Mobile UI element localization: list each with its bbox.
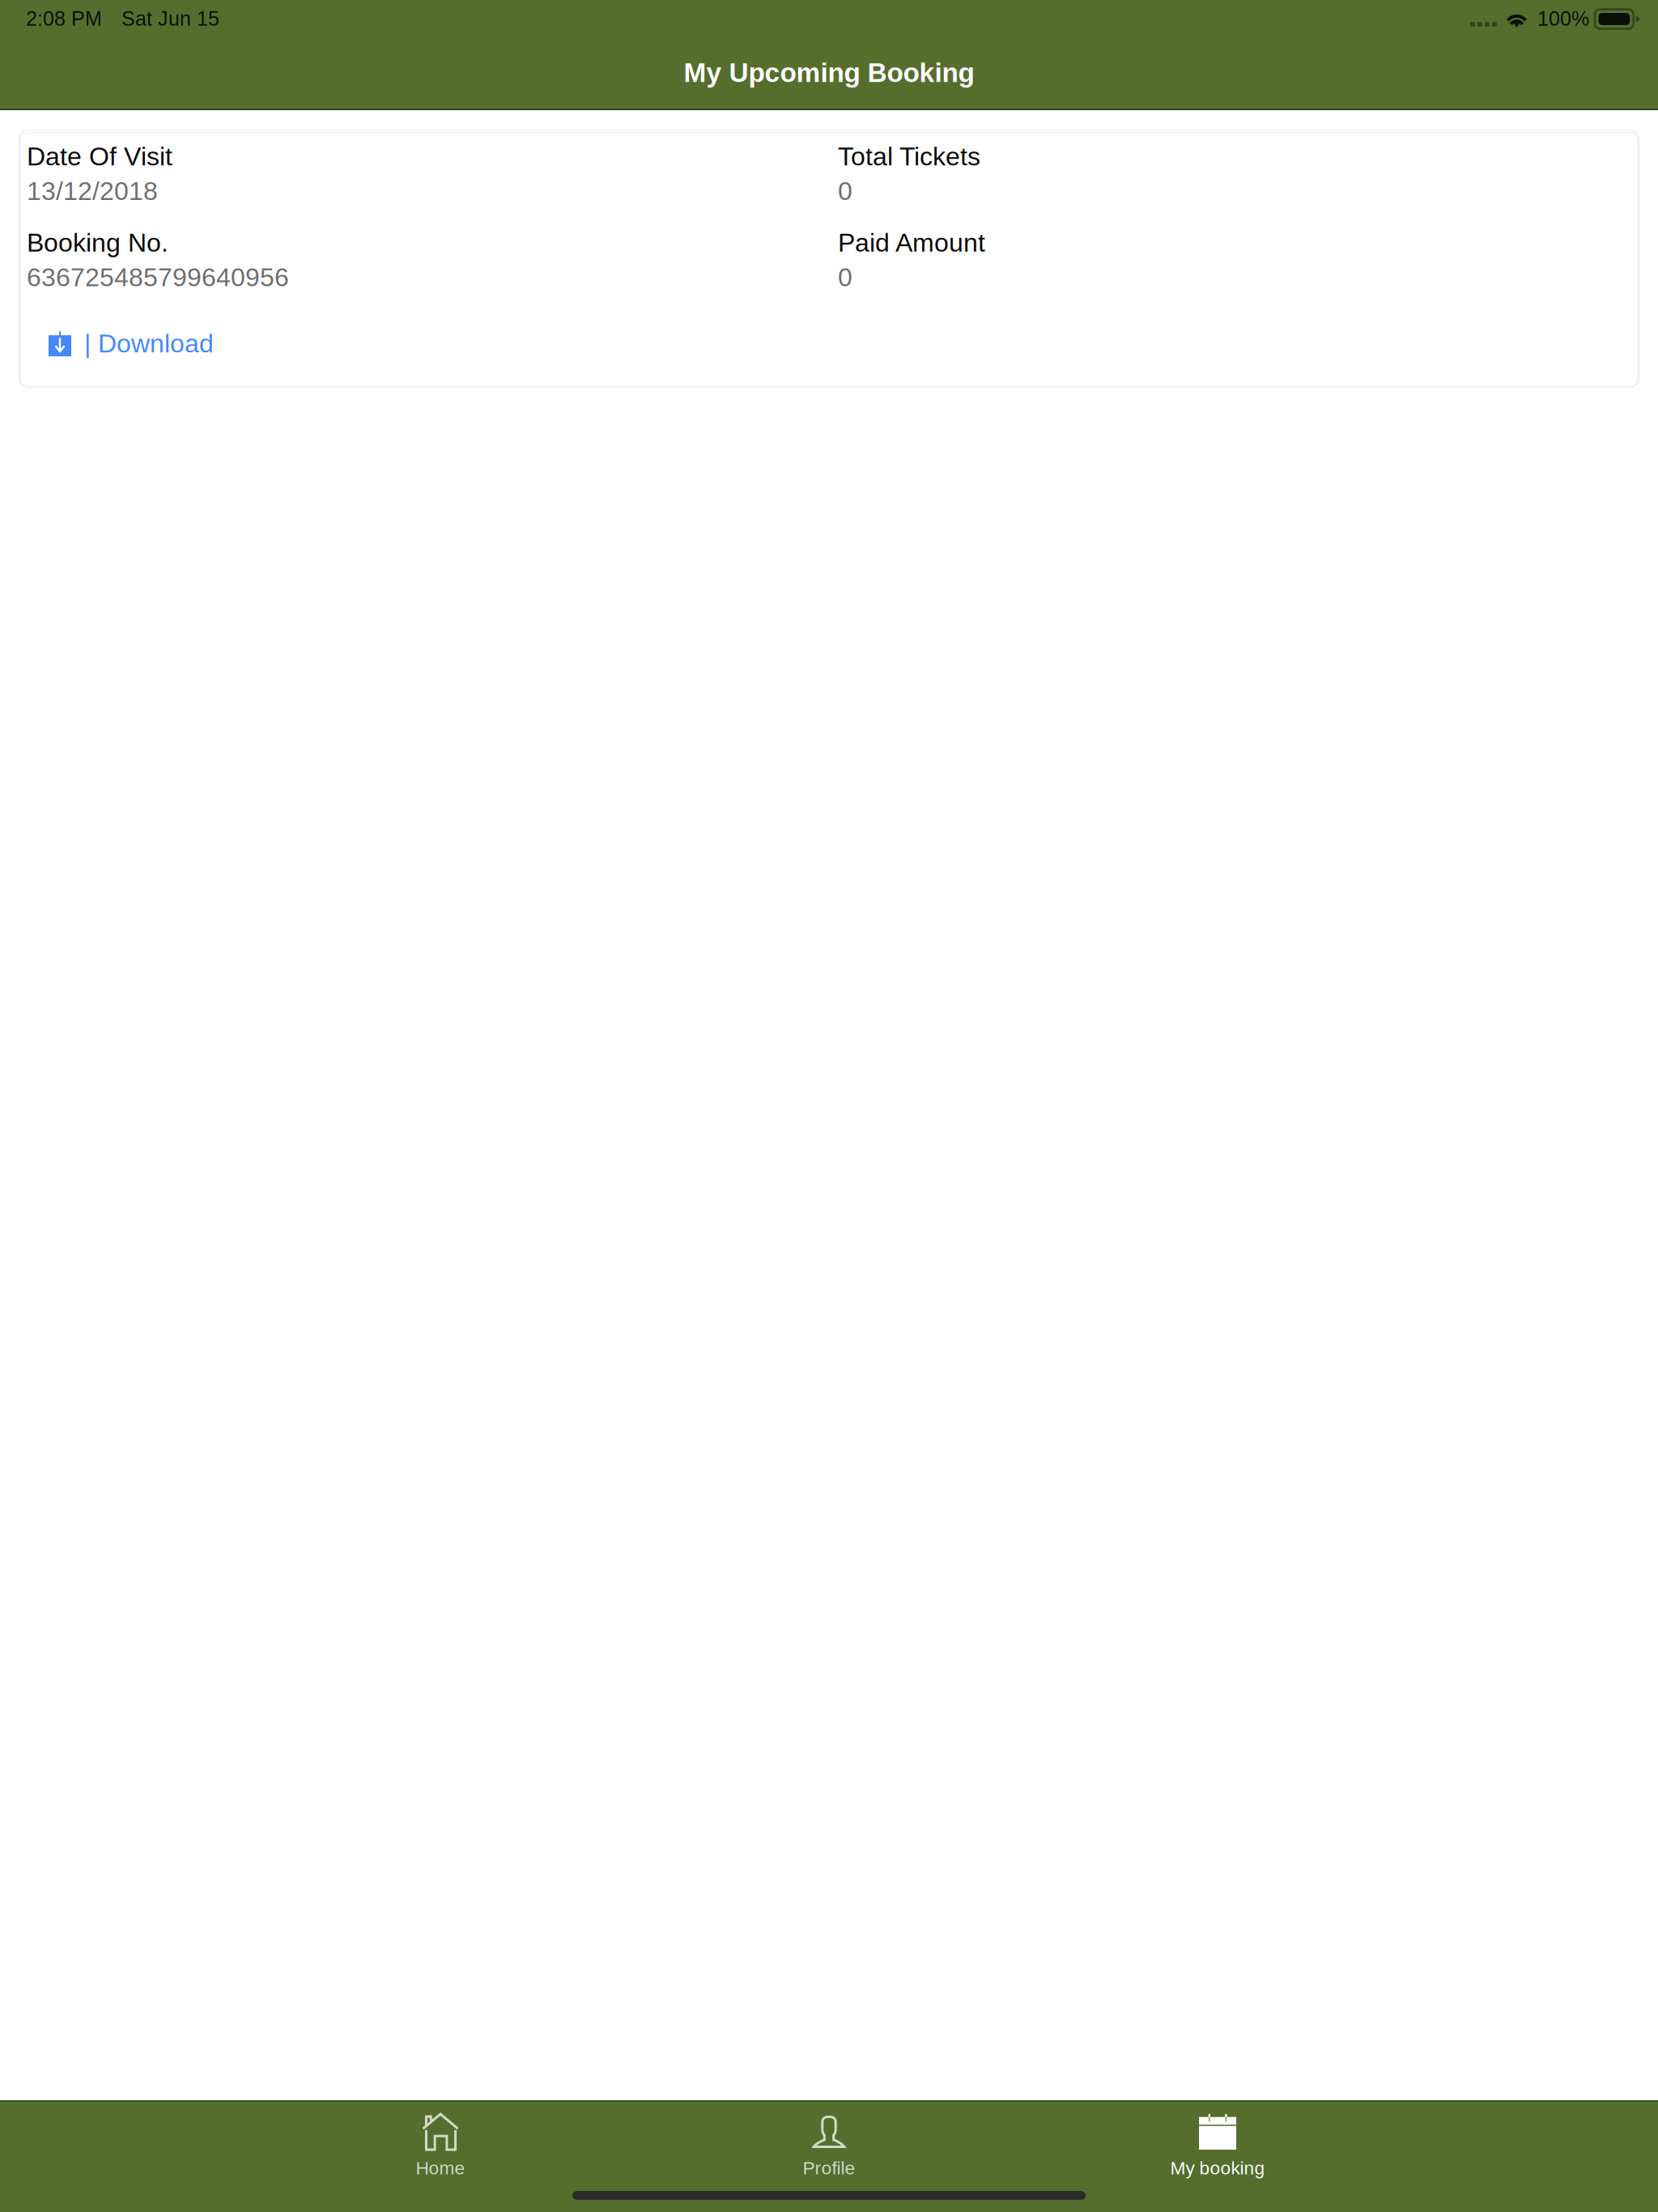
staticText: Date Of Visit <box>27 142 172 171</box>
button[interactable]: Profile <box>635 2101 1023 2212</box>
staticText: 0 <box>838 177 852 205</box>
staticText: 2:08 PM <box>26 7 102 30</box>
staticText: My booking <box>1170 2158 1265 2178</box>
button[interactable]: Home <box>246 2101 635 2212</box>
staticText: 0 <box>838 263 852 292</box>
staticText: | Download <box>84 329 214 358</box>
staticText: Booking No. <box>27 228 168 257</box>
staticText: My Upcoming Booking <box>684 57 974 88</box>
button[interactable]: | Download <box>27 329 214 358</box>
staticText: Sat Jun 15 <box>121 7 219 30</box>
staticText: Profile <box>803 2158 855 2178</box>
staticText: Total Tickets <box>838 142 980 171</box>
staticText: 13/12/2018 <box>27 177 158 205</box>
button[interactable]: My booking <box>1023 2101 1412 2212</box>
staticText: Home <box>416 2158 465 2178</box>
staticText: Paid Amount <box>838 228 985 257</box>
staticText: 636725485799640956 <box>27 263 289 292</box>
staticText: 100% <box>1537 7 1589 30</box>
